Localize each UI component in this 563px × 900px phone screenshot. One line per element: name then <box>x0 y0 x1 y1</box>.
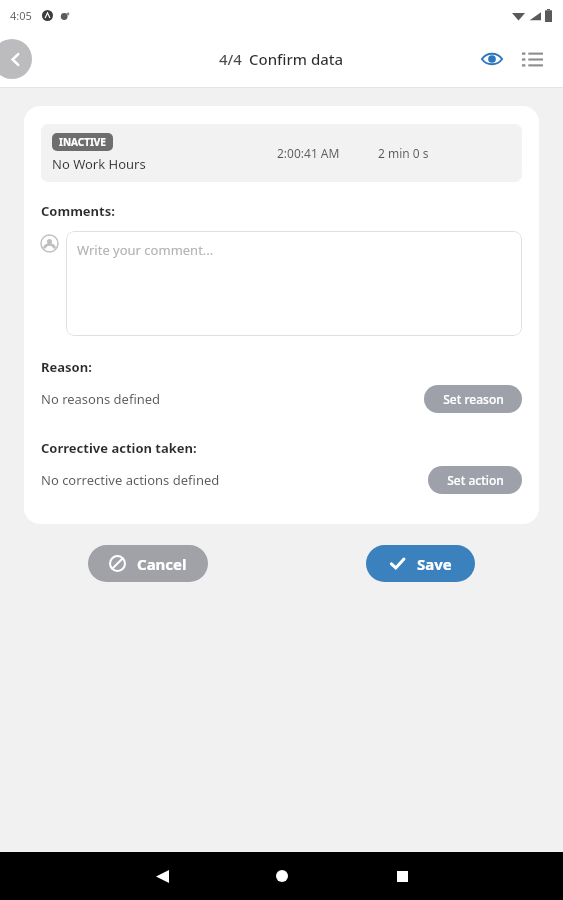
staticText: Comments: <box>41 202 115 220</box>
staticText: Set action <box>447 472 504 488</box>
staticText: 4/4 <box>219 49 242 69</box>
staticText: No corrective actions defined <box>41 471 220 489</box>
staticText: 2:00:41 AM <box>277 145 340 161</box>
button[interactable]: Back <box>138 852 186 900</box>
staticText: No reasons defined <box>41 390 161 408</box>
button[interactable]: Set reason <box>424 385 522 413</box>
staticText: Write your comment... <box>77 241 214 259</box>
button[interactable]: List <box>515 42 549 76</box>
staticText: Corrective action taken: <box>41 439 197 457</box>
staticText: Cancel <box>137 554 187 574</box>
staticText: Confirm data <box>249 49 344 69</box>
button[interactable]: Cancel <box>88 545 208 582</box>
button[interactable]: INACTIVE <box>41 124 522 182</box>
button[interactable]: Write your comment... <box>66 231 522 336</box>
button[interactable]: Home <box>258 852 306 900</box>
button[interactable]: Back <box>0 39 32 79</box>
staticText: Set reason <box>443 391 504 407</box>
staticText: 2 min 0 s <box>378 145 429 161</box>
staticText: No Work Hours <box>52 155 146 173</box>
button[interactable]: Preview <box>475 42 509 76</box>
button[interactable]: Save <box>366 545 475 582</box>
staticText: INACTIVE <box>59 135 106 149</box>
staticText: Save <box>417 554 452 574</box>
staticText: 4:05 <box>10 8 32 23</box>
button[interactable]: Set action <box>428 466 522 494</box>
button[interactable]: Recents <box>378 852 426 900</box>
staticText: Reason: <box>41 358 92 376</box>
